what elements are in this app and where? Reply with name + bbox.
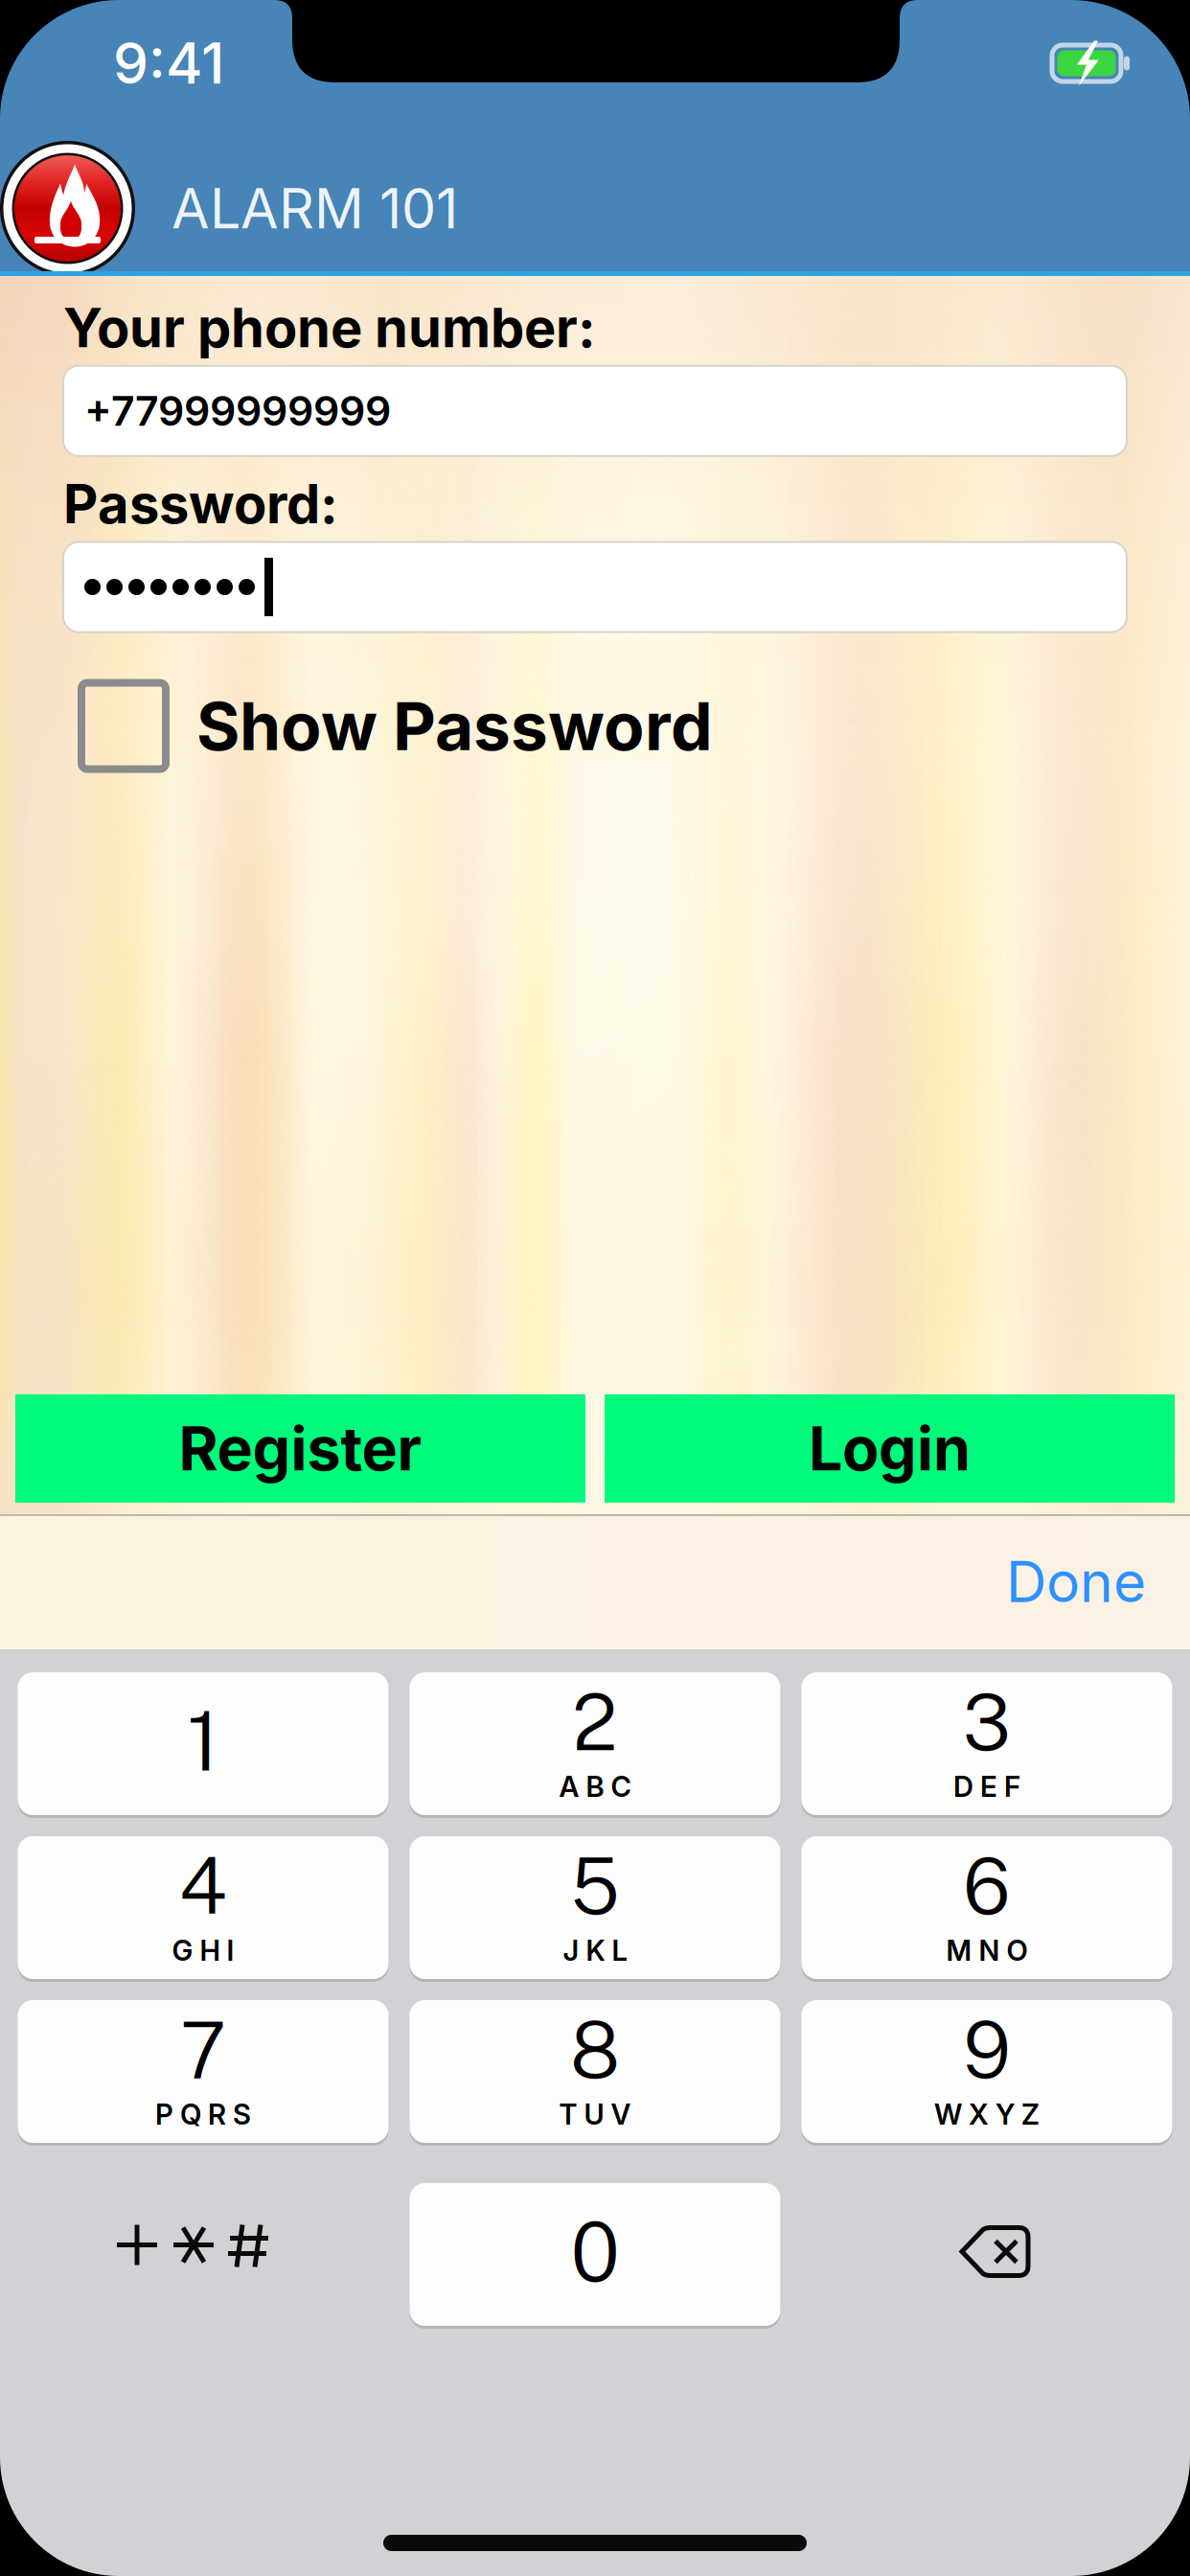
button[interactable]: 7 (18, 2000, 389, 2143)
button[interactable]: Show Password (63, 632, 1127, 769)
button[interactable]: 2 (410, 1672, 780, 1815)
staticText: G H I (172, 1933, 234, 1967)
staticText: T U V (559, 2097, 631, 2131)
staticText: Show Password (196, 686, 713, 766)
button[interactable]: Login (605, 1394, 1175, 1503)
staticText: Done (1006, 1548, 1146, 1616)
button[interactable]: Delete (801, 2183, 1172, 2326)
staticText: Register (179, 1412, 422, 1485)
button[interactable]: 8 (410, 2000, 780, 2143)
button[interactable]: Plus, star, hash (18, 2183, 389, 2326)
button[interactable]: Register (15, 1394, 585, 1503)
button[interactable]: 3 (801, 1672, 1172, 1815)
staticText: 9:41 (113, 29, 224, 97)
staticText: 5 (571, 1840, 619, 1932)
button[interactable]: 9 (801, 2000, 1172, 2143)
staticText: Your phone number: (63, 295, 596, 360)
staticText: ALARM 101 (172, 175, 458, 242)
button[interactable]: Done (1006, 1519, 1190, 1644)
button[interactable]: 1 (18, 1672, 389, 1815)
staticText: P Q R S (155, 2097, 251, 2131)
staticText: 3 (962, 1676, 1011, 1768)
staticText: A B C (559, 1770, 631, 1804)
staticText: 6 (963, 1840, 1011, 1932)
staticText: W X Y Z (934, 2097, 1040, 2131)
staticText: J K L (563, 1933, 627, 1967)
staticText: 8 (570, 2004, 620, 2095)
staticText: M N O (946, 1933, 1028, 1967)
staticText: 1 (187, 1693, 219, 1789)
staticText: Password: (63, 471, 338, 536)
staticText: 9 (963, 2004, 1011, 2095)
button[interactable]: 6 (801, 1836, 1172, 1979)
button[interactable]: 0 (410, 2183, 780, 2326)
staticText: +77999999999 (84, 386, 391, 436)
staticText: 0 (571, 2204, 619, 2300)
staticText: 7 (180, 2004, 226, 2095)
staticText: D E F (953, 1770, 1020, 1804)
button[interactable]: 5 (410, 1836, 780, 1979)
button[interactable]: 4 (18, 1836, 389, 1979)
staticText: Login (809, 1412, 971, 1485)
staticText: 2 (572, 1676, 618, 1768)
staticText: 4 (179, 1840, 228, 1932)
